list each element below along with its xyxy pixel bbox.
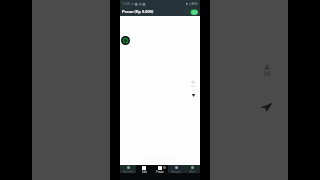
staticText: Pesan (Rp 0.000) (122, 9, 154, 14)
button[interactable]: Beranda (120, 165, 136, 174)
staticText: Akun (189, 170, 196, 174)
button[interactable]: My location (260, 100, 273, 113)
staticText: Pesan (156, 170, 164, 174)
button[interactable]: Help (184, 9, 189, 14)
staticText: Beranda (123, 170, 134, 174)
button[interactable]: Compass (260, 62, 274, 76)
button[interactable]: Order now (190, 9, 198, 15)
staticText: 10:48 ✉ ⬤ ▣ ⬤ (122, 2, 146, 6)
button[interactable]: Info (136, 165, 152, 174)
button[interactable]: Riwayat (168, 165, 184, 174)
staticText: Riwayat (171, 170, 181, 174)
button[interactable]: Pesan (152, 165, 168, 174)
button[interactable]: Akun (184, 165, 200, 174)
staticText: Info (142, 170, 147, 174)
staticText: ◤ ▯ 86% (186, 2, 198, 6)
